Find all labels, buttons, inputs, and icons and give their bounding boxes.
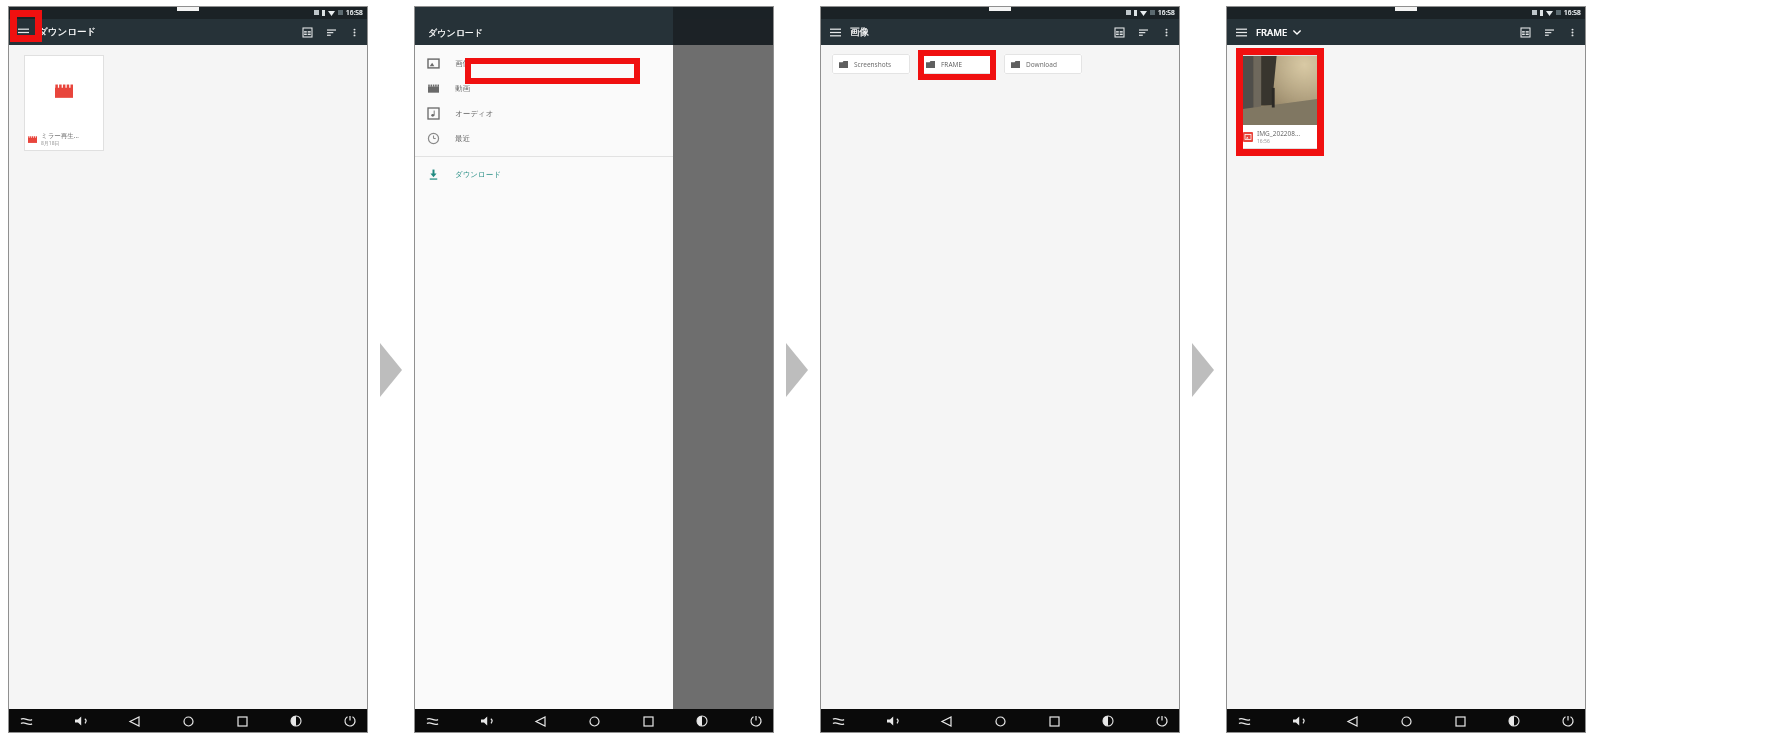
staticText: IMG_202208… bbox=[1257, 129, 1301, 138]
button[interactable]: Open navigation drawer bbox=[820, 19, 850, 45]
staticText: 16:56 bbox=[1257, 138, 1270, 145]
button[interactable]: View mode bbox=[295, 20, 319, 44]
staticText: ダウンロード bbox=[428, 27, 484, 38]
button[interactable]: View mode bbox=[1107, 20, 1131, 44]
staticText: ダウンロード bbox=[455, 170, 501, 179]
staticText: Download bbox=[1026, 60, 1057, 69]
button[interactable]: Recents bbox=[640, 713, 656, 729]
button[interactable]: Back bbox=[532, 713, 548, 729]
button[interactable]: Sort bbox=[319, 20, 343, 44]
staticText: 8月18日 bbox=[41, 140, 60, 147]
button[interactable]: Screenshot bbox=[288, 713, 304, 729]
button[interactable]: Home bbox=[586, 713, 602, 729]
staticText: ミラー再生… bbox=[41, 131, 79, 140]
button[interactable]: Gestures bbox=[1236, 713, 1252, 729]
button[interactable]: Gestures bbox=[830, 713, 846, 729]
button[interactable]: Download bbox=[1004, 54, 1082, 74]
button[interactable]: Gestures bbox=[424, 713, 440, 729]
button[interactable]: FRAME bbox=[919, 54, 995, 74]
button[interactable]: Home bbox=[992, 713, 1008, 729]
staticText: Screenshots bbox=[854, 60, 892, 69]
staticText: 最近 bbox=[455, 134, 470, 143]
button[interactable]: Screenshot bbox=[694, 713, 710, 729]
staticText: ダウンロード bbox=[38, 26, 97, 38]
button[interactable]: Gestures bbox=[18, 713, 34, 729]
button[interactable]: ミラー再生… bbox=[24, 55, 104, 151]
staticText: 動画 bbox=[455, 84, 470, 93]
button[interactable]: 動画 bbox=[414, 76, 673, 101]
staticText: オーディオ bbox=[455, 109, 494, 118]
button[interactable]: Volume bbox=[72, 713, 88, 729]
button[interactable]: 画像 bbox=[414, 51, 673, 76]
staticText: 16:58 bbox=[1158, 8, 1175, 17]
button[interactable]: View mode bbox=[1513, 20, 1537, 44]
staticText: 画像 bbox=[850, 26, 869, 38]
button[interactable]: ダウンロード bbox=[414, 162, 673, 187]
staticText: 画像 bbox=[455, 59, 470, 68]
button[interactable]: Volume bbox=[884, 713, 900, 729]
button[interactable]: Volume bbox=[478, 713, 494, 729]
button[interactable]: Home bbox=[1398, 713, 1414, 729]
staticText: FRAME bbox=[941, 60, 963, 69]
button[interactable]: Back bbox=[126, 713, 142, 729]
button[interactable]: Screenshot bbox=[1506, 713, 1522, 729]
button[interactable]: Screenshot bbox=[1100, 713, 1116, 729]
button[interactable]: オーディオ bbox=[414, 101, 673, 126]
button[interactable]: Power bbox=[748, 713, 764, 729]
button[interactable]: Home bbox=[180, 713, 196, 729]
button[interactable]: Open navigation drawer bbox=[8, 19, 38, 45]
button[interactable]: More options bbox=[343, 21, 365, 43]
button[interactable]: Back bbox=[1344, 713, 1360, 729]
staticText: FRAME bbox=[1256, 26, 1288, 39]
button[interactable]: Power bbox=[1560, 713, 1576, 729]
button[interactable]: More options bbox=[1155, 21, 1177, 43]
staticText: 16:58 bbox=[1564, 8, 1581, 17]
button[interactable]: Volume bbox=[1290, 713, 1306, 729]
button[interactable]: Screenshots bbox=[832, 54, 910, 74]
button[interactable]: Sort bbox=[1537, 20, 1561, 44]
button[interactable]: Open navigation drawer bbox=[1226, 19, 1256, 45]
button[interactable]: IMG_202208… bbox=[1239, 55, 1321, 149]
staticText: 16:58 bbox=[346, 8, 363, 17]
button[interactable]: Back bbox=[938, 713, 954, 729]
button[interactable]: Recents bbox=[234, 713, 250, 729]
button[interactable]: Power bbox=[1154, 713, 1170, 729]
button[interactable]: Power bbox=[342, 713, 358, 729]
button[interactable]: Recents bbox=[1046, 713, 1062, 729]
button[interactable]: 最近 bbox=[414, 126, 673, 151]
button[interactable]: More options bbox=[1561, 21, 1583, 43]
button[interactable]: Sort bbox=[1131, 20, 1155, 44]
button[interactable]: Recents bbox=[1452, 713, 1468, 729]
